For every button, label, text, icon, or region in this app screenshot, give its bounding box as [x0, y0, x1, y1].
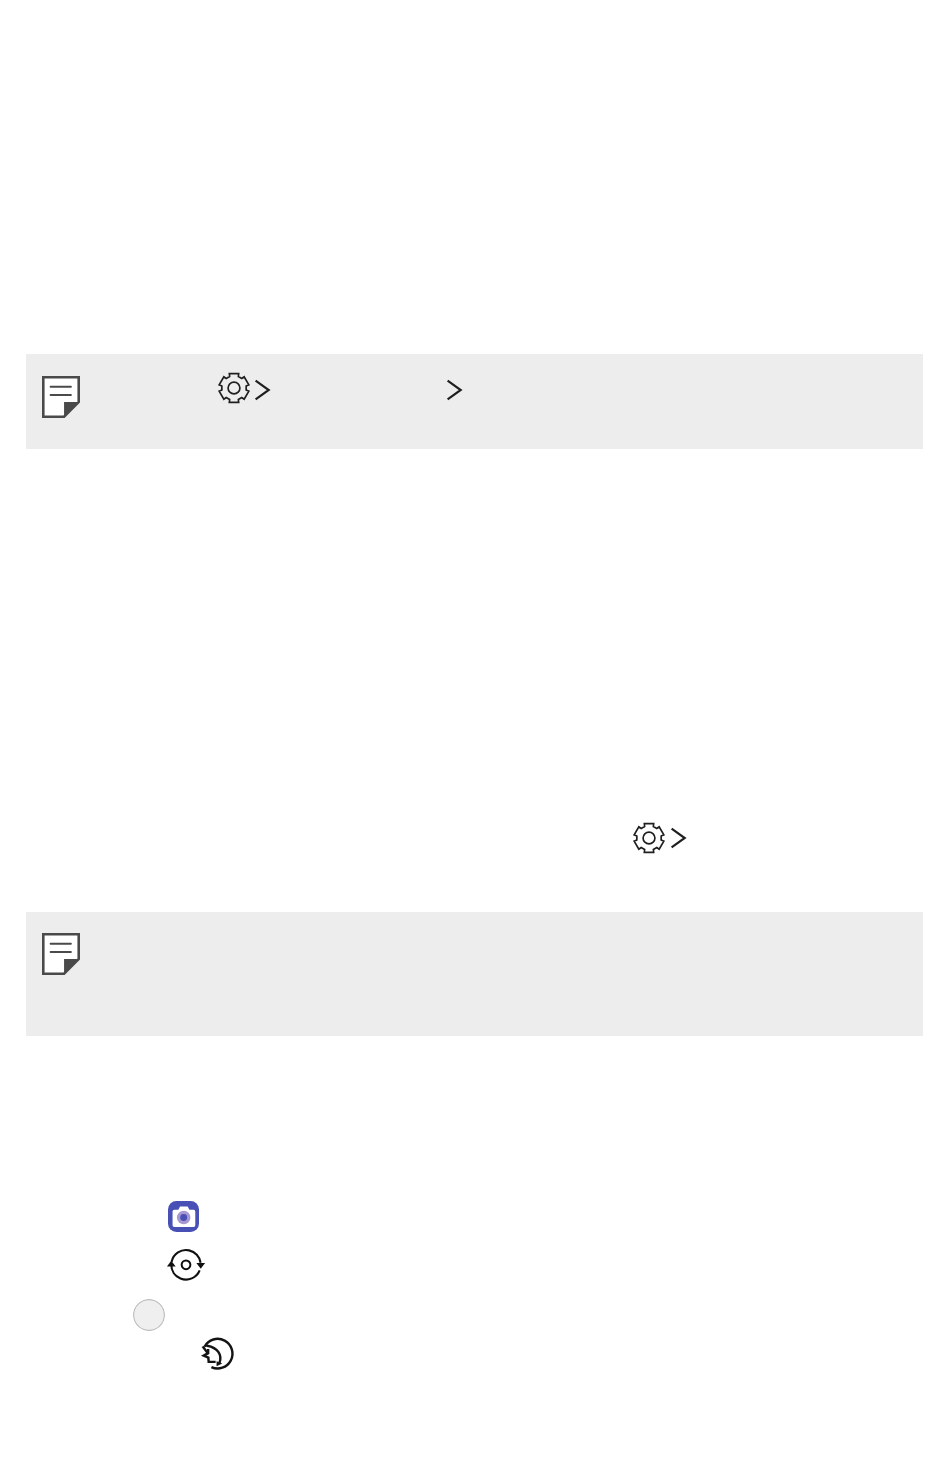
- button[interactable]: Settings: [218, 372, 270, 404]
- button[interactable]: Shutter: [133, 1299, 165, 1331]
- button[interactable]: Next: [440, 372, 468, 404]
- button[interactable]: Camera app: [168, 1201, 199, 1232]
- button[interactable]: Settings: [633, 822, 686, 854]
- button[interactable]: Portrait mode: [202, 1337, 233, 1370]
- button[interactable]: Switch camera: [167, 1249, 204, 1280]
